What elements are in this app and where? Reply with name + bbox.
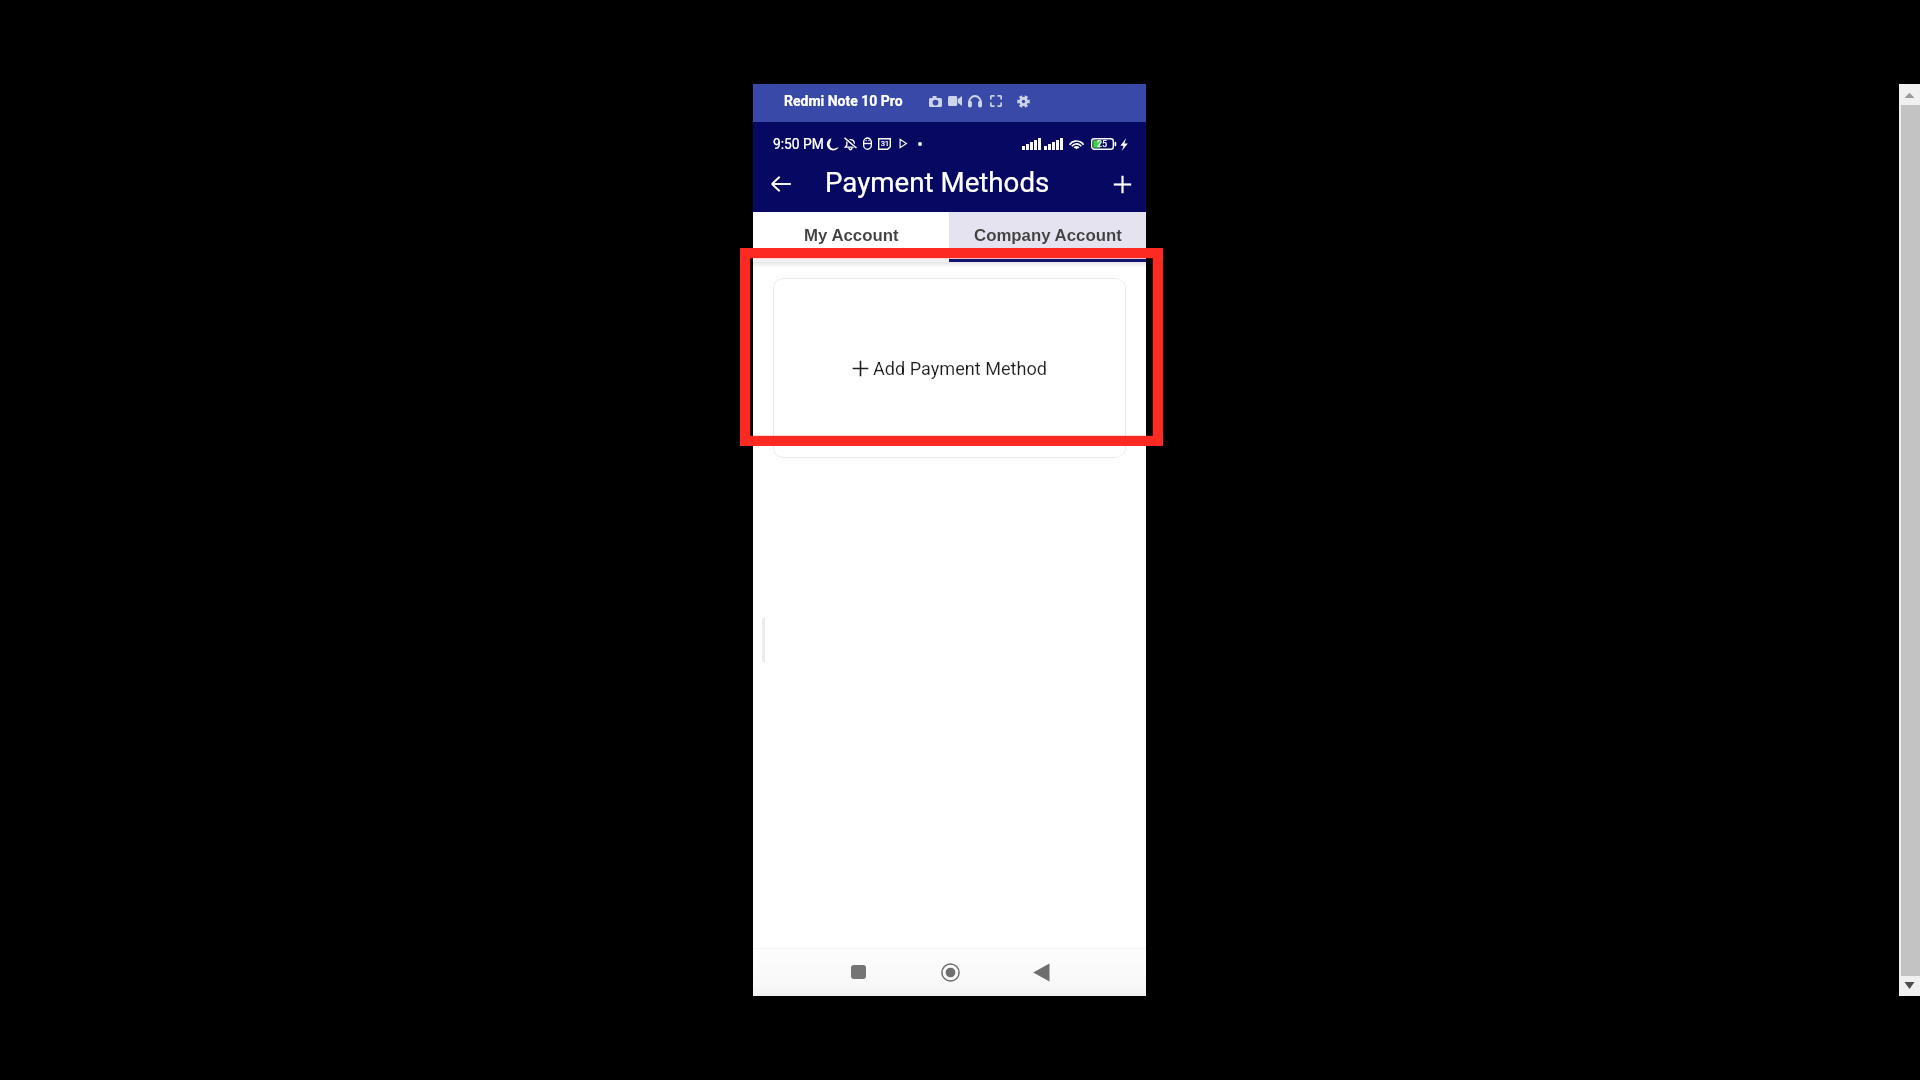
button[interactable]: Back bbox=[764, 167, 798, 201]
button[interactable]: Scroll bar bbox=[1899, 84, 1920, 996]
button[interactable]: Audio bbox=[964, 90, 985, 112]
staticText: Payment Methods bbox=[825, 166, 1050, 198]
button[interactable]: Company Account bbox=[949, 212, 1146, 259]
staticText: 31 bbox=[881, 140, 889, 148]
staticText: 25 bbox=[1097, 139, 1108, 150]
button[interactable]: Home bbox=[933, 955, 967, 989]
button[interactable]: Add Payment Method bbox=[773, 278, 1126, 458]
staticText: My Account bbox=[804, 226, 899, 245]
staticText: 9:50 PM bbox=[773, 136, 824, 152]
button[interactable]: My Account bbox=[753, 212, 949, 259]
button[interactable]: Back bbox=[1024, 955, 1058, 989]
button[interactable]: Screenshot bbox=[926, 90, 945, 112]
button[interactable]: Record screen bbox=[945, 90, 964, 112]
button[interactable]: Add payment method bbox=[1105, 167, 1139, 201]
button[interactable]: Fullscreen bbox=[985, 90, 1006, 112]
staticText: Company Account bbox=[974, 226, 1122, 245]
button[interactable]: Settings bbox=[1013, 90, 1033, 112]
staticText: Redmi Note 10 Pro bbox=[784, 93, 903, 109]
button[interactable]: Recents bbox=[841, 955, 875, 989]
staticText: Add Payment Method bbox=[873, 358, 1047, 379]
